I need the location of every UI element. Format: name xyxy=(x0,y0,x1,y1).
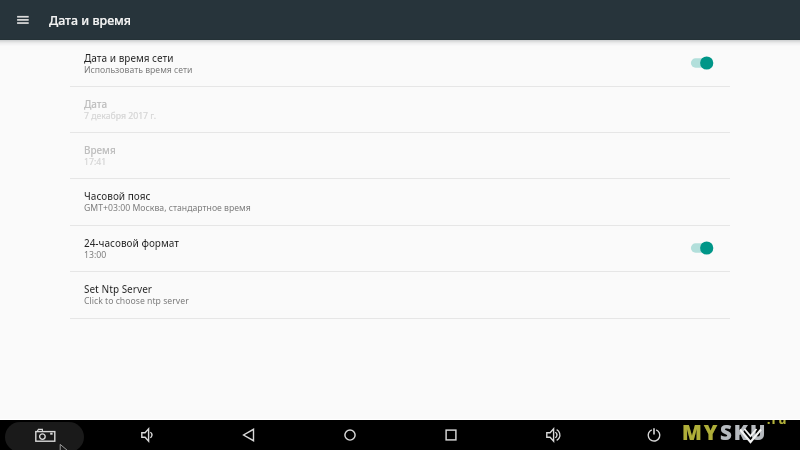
staticText: .ru xyxy=(767,420,788,427)
staticText: Часовой пояс xyxy=(84,189,151,202)
button[interactable]: Volume up xyxy=(535,420,569,450)
staticText: Дата и время xyxy=(49,12,132,29)
staticText: Дата xyxy=(84,97,108,110)
staticText: 24-часовой формат xyxy=(84,236,179,249)
staticText: Дата и время сети xyxy=(84,51,174,64)
button[interactable]: Menu xyxy=(8,6,36,34)
button[interactable]: Volume down xyxy=(130,420,164,450)
button[interactable]: Power xyxy=(637,420,671,450)
staticText: Время xyxy=(84,143,116,156)
staticText: GMT+03:00 Москва, стандартное время xyxy=(84,202,251,214)
button[interactable]: Home xyxy=(333,420,367,450)
staticText: SKU xyxy=(720,420,768,446)
button[interactable]: Дата и время сети xyxy=(0,40,800,86)
button[interactable]: Время xyxy=(0,132,800,178)
staticText: MY xyxy=(682,420,720,446)
staticText: Set Ntp Server xyxy=(84,282,153,295)
staticText: 17:41 xyxy=(84,156,107,168)
staticText: Использовать время сети xyxy=(84,64,193,76)
staticText: 13:00 xyxy=(84,249,107,261)
button[interactable]: Back xyxy=(232,420,266,450)
staticText: 7 декабря 2017 г. xyxy=(84,110,157,122)
button[interactable]: 24-часовой формат xyxy=(0,225,800,271)
button[interactable]: Toggle xyxy=(685,51,719,75)
button[interactable]: Часовой пояс xyxy=(0,178,800,224)
button[interactable]: Screenshot xyxy=(5,422,84,450)
button[interactable]: Recents xyxy=(434,420,468,450)
button[interactable]: Toggle xyxy=(685,236,719,260)
button[interactable]: Set Ntp Server xyxy=(0,271,800,317)
button[interactable]: Дата xyxy=(0,86,800,132)
staticText: Click to choose ntp server xyxy=(84,295,189,307)
